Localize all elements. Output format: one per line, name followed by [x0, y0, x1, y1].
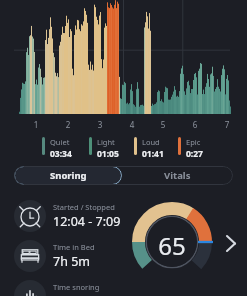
staticText: Vitals [164, 169, 191, 182]
staticText: 1 [27, 119, 45, 130]
button[interactable]: Loud [134, 137, 164, 160]
staticText: Light [97, 137, 115, 147]
staticText: 01:41 [142, 148, 164, 160]
button[interactable]: 65 [138, 195, 238, 290]
staticText: Snoring [50, 169, 87, 182]
staticText: Loud [142, 137, 160, 147]
button[interactable]: Vitals [122, 166, 233, 185]
button[interactable]: Light [89, 137, 119, 160]
staticText: Time snoring [53, 282, 100, 292]
staticText: 7h 5m [53, 253, 90, 270]
staticText: Quiet [50, 137, 70, 147]
button[interactable]: Started / Stopped [14, 200, 139, 232]
staticText: 65 [152, 229, 192, 262]
staticText: Epic [186, 137, 201, 147]
staticText: Started / Stopped [53, 202, 115, 212]
button[interactable]: Time in Bed [14, 240, 139, 272]
staticText: 12:04 - 7:09 [53, 213, 121, 230]
staticText: 0:27 [186, 148, 203, 160]
button[interactable]: Epic [178, 137, 203, 160]
staticText: 5 [154, 119, 172, 130]
staticText: Time in Bed [53, 242, 95, 252]
staticText: 6 [186, 119, 204, 130]
staticText: 03:34 [50, 148, 72, 160]
staticText: 01:05 [97, 148, 119, 160]
button[interactable]: Time snoring [14, 280, 139, 296]
staticText: 2 [59, 119, 77, 130]
button[interactable]: Snoring [14, 166, 122, 185]
staticText: 4 [123, 119, 141, 130]
staticText: 3 [91, 119, 109, 130]
button[interactable]: Quiet [42, 137, 72, 160]
staticText: 7 [218, 119, 236, 130]
button[interactable]: Open sleep score details [224, 232, 246, 254]
